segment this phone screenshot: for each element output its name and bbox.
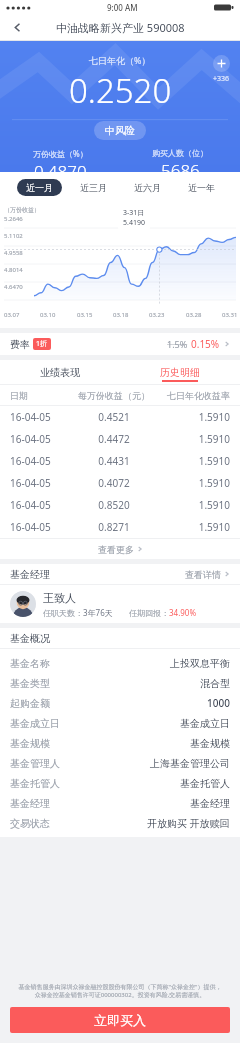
- staticText: 34.90%: [169, 607, 197, 618]
- staticText: 0.8271: [73, 520, 155, 534]
- staticText: 5686: [161, 159, 200, 172]
- staticText: 1.5910: [155, 410, 230, 424]
- staticText: 03.23: [149, 311, 165, 319]
- staticText: 购买人数（位）: [152, 148, 208, 158]
- staticText: 1.5910: [155, 498, 230, 512]
- staticText: 上投双息平衡: [170, 657, 230, 670]
- staticText: 1.5910: [155, 520, 230, 534]
- staticText: 七日年化收益率: [155, 390, 230, 401]
- staticText: 5.4190: [123, 218, 145, 228]
- staticText: 16-04-05: [10, 432, 73, 446]
- staticText: 03.07: [4, 311, 20, 319]
- staticText: 3-31日: [123, 208, 145, 218]
- staticText: 费率: [10, 338, 30, 351]
- staticText: 近一年: [188, 182, 215, 193]
- staticText: 0.4072: [73, 476, 155, 490]
- staticText: 万份收益（%）: [33, 148, 88, 159]
- button[interactable]: 近一年: [179, 179, 224, 196]
- staticText: 0.2520: [69, 68, 172, 113]
- staticText: 开放购买 开放赎回: [147, 816, 230, 830]
- staticText: 众禄金控基金销售许可证000000302。投资有风险,交易需谨慎。: [12, 991, 228, 999]
- staticText: 1折: [36, 339, 48, 349]
- staticText: +336: [213, 74, 230, 84]
- button[interactable]: 查看更多: [0, 539, 240, 559]
- staticText: 历史明细: [160, 366, 200, 379]
- staticText: 混合型: [200, 677, 230, 690]
- staticText: 基金经理: [190, 797, 230, 810]
- staticText: 基金成立日: [10, 717, 60, 730]
- staticText: 王致人: [43, 591, 76, 605]
- staticText: 任期回报：: [129, 608, 169, 618]
- staticText: 任职天数：: [43, 608, 83, 618]
- staticText: 0.4472: [73, 432, 155, 446]
- staticText: 基金名称: [10, 657, 50, 670]
- button[interactable]: 中风险: [94, 121, 146, 140]
- staticText: 03.28: [186, 311, 202, 319]
- staticText: （万份收益）: [4, 206, 40, 214]
- staticText: 近三月: [80, 182, 107, 193]
- staticText: 03.15: [77, 311, 93, 319]
- staticText: 3年76天: [83, 607, 113, 618]
- staticText: 近六月: [134, 182, 161, 193]
- staticText: 1.5910: [155, 432, 230, 446]
- staticText: 1.5%: [167, 338, 188, 350]
- button[interactable]: 近六月: [125, 179, 170, 196]
- staticText: 1000: [207, 696, 230, 710]
- staticText: 16-04-05: [10, 476, 73, 490]
- staticText: 基金销售服务由深圳众禄金融控股股份有限公司（下简称"众禄金控"）提供，: [12, 983, 228, 991]
- staticText: 5.2646: [4, 215, 23, 223]
- staticText: 1.5910: [155, 454, 230, 468]
- staticText: 0.8520: [73, 498, 155, 512]
- button[interactable]: Back: [0, 15, 34, 40]
- staticText: 查看更多: [98, 544, 134, 555]
- button[interactable]: 近一月: [17, 179, 62, 196]
- staticText: 03.18: [113, 311, 129, 319]
- staticText: 03.10: [40, 311, 56, 319]
- staticText: 近一月: [26, 182, 53, 193]
- staticText: 日期: [10, 390, 73, 401]
- button[interactable]: 业绩表现: [0, 360, 120, 384]
- staticText: 业绩表现: [40, 366, 80, 379]
- staticText: 16-04-05: [10, 520, 73, 534]
- staticText: 0.4521: [73, 410, 155, 424]
- staticText: 0.4870: [34, 160, 87, 172]
- button[interactable]: 基金经理: [0, 564, 240, 584]
- staticText: 9:00 AM: [107, 2, 138, 13]
- staticText: 0.4431: [73, 454, 155, 468]
- staticText: 基金管理人: [10, 757, 60, 770]
- staticText: 基金规模: [10, 737, 50, 750]
- button[interactable]: 立即买入: [10, 1007, 230, 1033]
- button[interactable]: 费率: [0, 333, 240, 355]
- staticText: 立即买入: [94, 1012, 146, 1028]
- staticText: 16-04-05: [10, 454, 73, 468]
- staticText: 每万份收益（元）: [73, 390, 155, 401]
- staticText: 基金经理: [10, 568, 50, 581]
- staticText: 基金托管人: [180, 777, 230, 790]
- staticText: 中油战略新兴产业 590008: [56, 20, 185, 35]
- staticText: 基金规模: [190, 737, 230, 750]
- staticText: 中风险: [105, 124, 135, 137]
- staticText: 交易状态: [10, 817, 50, 830]
- button[interactable]: 历史明细: [120, 360, 240, 384]
- staticText: 4.8014: [4, 266, 23, 274]
- button[interactable]: 王致人: [0, 585, 240, 623]
- staticText: 基金托管人: [10, 777, 60, 790]
- staticText: 七日年化（%）: [89, 54, 151, 66]
- staticText: 4.9558: [4, 249, 23, 257]
- staticText: 0.15%: [191, 337, 220, 351]
- staticText: 16-04-05: [10, 498, 73, 512]
- staticText: 03.31: [222, 311, 238, 319]
- staticText: 基金概况: [10, 632, 50, 645]
- button[interactable]: Add to favourites: [213, 55, 230, 72]
- staticText: 1.5910: [155, 476, 230, 490]
- staticText: 基金类型: [10, 677, 50, 690]
- staticText: 起购金额: [10, 697, 50, 710]
- staticText: 上海基金管理公司: [150, 757, 230, 770]
- staticText: 4.6470: [4, 283, 23, 291]
- staticText: 基金成立日: [180, 717, 230, 730]
- staticText: 16-04-05: [10, 410, 73, 424]
- staticText: 5.1102: [4, 232, 23, 240]
- button[interactable]: 近三月: [71, 179, 116, 196]
- staticText: 基金经理: [10, 797, 50, 810]
- staticText: 查看详情: [185, 569, 221, 580]
